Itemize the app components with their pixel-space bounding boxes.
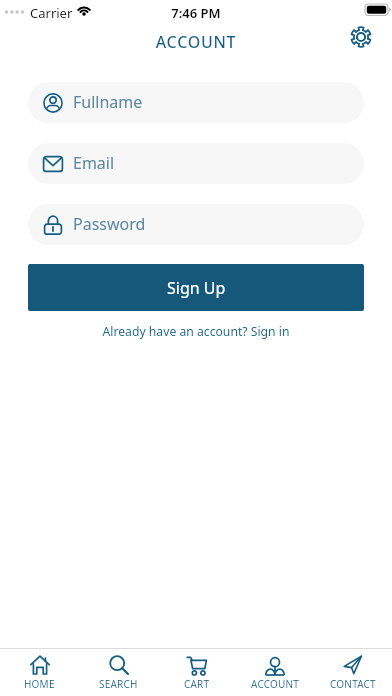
staticText: SEARCH bbox=[99, 677, 138, 691]
staticText: Carrier bbox=[30, 4, 73, 22]
staticText: Fullname bbox=[73, 91, 143, 113]
staticText: Sign Up bbox=[167, 277, 226, 299]
staticText: Password bbox=[73, 213, 146, 235]
staticText: ACCOUNT bbox=[0, 31, 392, 53]
staticText: Email bbox=[73, 152, 115, 174]
staticText: CART bbox=[184, 677, 210, 691]
staticText: ACCOUNT bbox=[251, 677, 300, 691]
staticText: HOME bbox=[24, 677, 55, 691]
staticText: CONTACT bbox=[330, 677, 376, 691]
staticText: 7:46 PM bbox=[0, 4, 392, 22]
staticText: Already have an account? Sign in bbox=[0, 323, 392, 340]
